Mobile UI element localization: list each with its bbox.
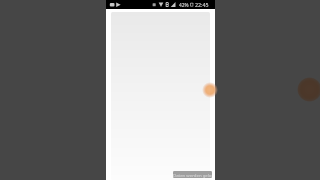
button[interactable]	[111, 12, 210, 180]
staticText: Daten werden geladen	[173, 172, 212, 178]
button[interactable]: Daten werden geladen	[173, 171, 212, 178]
staticText: 22:45	[195, 1, 209, 8]
staticText: 42%	[179, 2, 189, 9]
button[interactable]: Add	[202, 82, 218, 98]
